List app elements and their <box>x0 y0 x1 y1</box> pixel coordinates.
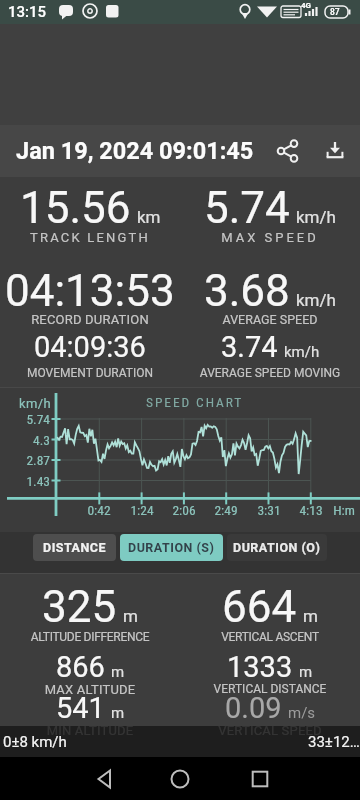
staticText: 04:13:53 <box>5 265 175 317</box>
staticText: 3.68 <box>204 265 290 317</box>
staticText: MOVEMENT DURATION <box>0 366 180 380</box>
staticText: 4:13 <box>291 502 331 518</box>
button[interactable] <box>160 757 200 800</box>
staticText: 325 <box>42 581 117 633</box>
staticText: 4G <box>301 1 312 10</box>
staticText: 1.43 <box>2 473 50 489</box>
staticText: 0:42 <box>79 502 119 518</box>
staticText: 15.56 <box>20 182 131 234</box>
staticText: 13:15 <box>8 3 47 21</box>
staticText: 664 <box>222 581 297 633</box>
staticText: AVERAGE SPEED <box>180 312 360 327</box>
staticText: 2:49 <box>206 502 246 518</box>
staticText: m <box>123 606 138 626</box>
button[interactable] <box>274 137 302 165</box>
button[interactable] <box>321 137 349 165</box>
staticText: m <box>111 704 125 722</box>
staticText: m <box>111 663 125 681</box>
staticText: TRACK LENGTH <box>0 230 180 245</box>
staticText: MIN ALTITUDE <box>0 723 180 738</box>
staticText: RECORD DURATION <box>0 312 180 327</box>
staticText: AVERAGE SPEED MOVING <box>180 366 360 380</box>
staticText: SPEED CHART <box>146 394 244 410</box>
staticText: Jan 19, 2024 09:01:45 <box>16 137 254 165</box>
button[interactable] <box>85 757 125 800</box>
staticText: 5.74 <box>204 182 290 234</box>
staticText: km <box>137 207 161 227</box>
staticText: VERTICAL SPEED <box>180 723 360 738</box>
staticText: 04:09:36 <box>34 330 146 364</box>
staticText: 1333 <box>227 650 293 684</box>
staticText: 0.09 <box>225 691 282 725</box>
staticText: 2:06 <box>164 502 204 518</box>
staticText: 3:31 <box>249 502 289 518</box>
staticText: DURATION (O) <box>233 540 321 555</box>
staticText: 4.3 <box>2 432 50 448</box>
staticText: m/s <box>288 704 316 722</box>
staticText: km/h <box>296 207 336 227</box>
staticText: MAX ALTITUDE <box>0 682 180 697</box>
button[interactable]: DURATION (S) <box>120 534 223 561</box>
staticText: VERTICAL DISTANCE <box>180 682 360 696</box>
staticText: km/h <box>2 396 51 411</box>
staticText: ALTITUDE DIFFERENCE <box>0 630 180 644</box>
staticText: 33±12… <box>308 733 360 751</box>
staticText: m <box>299 663 313 681</box>
staticText: VERTICAL ASCENT <box>180 630 360 644</box>
staticText: 3.74 <box>221 330 278 364</box>
staticText: km/h <box>296 290 336 310</box>
staticText: MAX SPEED <box>180 230 360 245</box>
staticText: 0±8 km/h <box>3 733 67 751</box>
staticText: 541 <box>56 691 105 725</box>
staticText: 2.87 <box>2 452 50 468</box>
staticText: km/h <box>284 343 320 361</box>
button[interactable]: DURATION (O) <box>227 534 327 561</box>
staticText: H:m <box>326 502 360 518</box>
staticText: DURATION (S) <box>128 540 215 555</box>
staticText: 87 <box>330 7 340 17</box>
staticText: DISTANCE <box>43 540 106 555</box>
staticText: m <box>303 606 318 626</box>
button[interactable] <box>240 757 280 800</box>
staticText: 1:24 <box>122 502 162 518</box>
staticText: 5.74 <box>2 411 50 427</box>
button[interactable]: DISTANCE <box>33 534 116 561</box>
staticText: 866 <box>56 650 105 684</box>
